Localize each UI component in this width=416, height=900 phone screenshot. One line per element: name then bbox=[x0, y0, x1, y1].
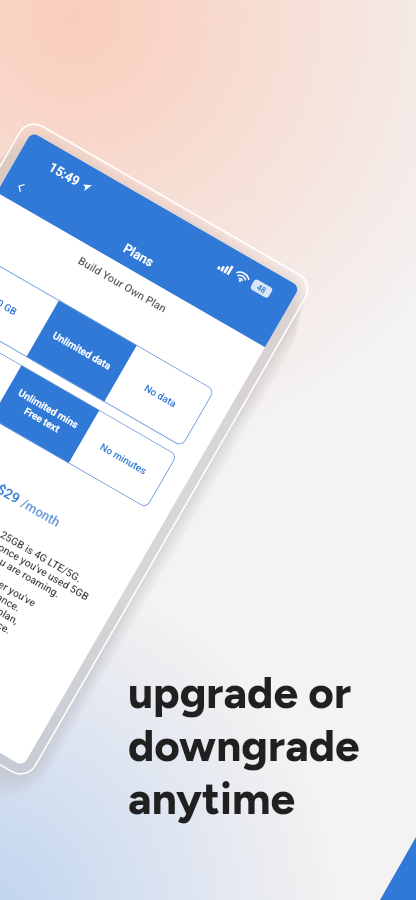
button[interactable]: Unlimited mins Free text bbox=[0, 365, 100, 464]
staticText: of your monthly allowance whilst you are… bbox=[0, 472, 63, 600]
staticText: upgrade or bbox=[128, 666, 352, 719]
staticText: No data bbox=[142, 382, 178, 410]
staticText: downgrade bbox=[128, 719, 360, 772]
staticText: 50 GB bbox=[0, 294, 19, 318]
button[interactable]: 50 GB bbox=[0, 255, 59, 357]
staticText: No minutes bbox=[98, 441, 149, 477]
staticText: Your data speeds may slow down once you'… bbox=[0, 461, 91, 603]
staticText: Unlimited data, of which the first 25GB … bbox=[0, 451, 84, 585]
staticText: /month bbox=[18, 496, 63, 530]
staticText: Plans bbox=[121, 240, 157, 270]
staticText: You will still receive unlimited data af… bbox=[0, 489, 38, 609]
staticText: 48 bbox=[255, 283, 268, 296]
staticText: Unlimited mins Free text bbox=[10, 387, 81, 442]
staticText: used up your full high speed data allowa… bbox=[0, 499, 23, 614]
button[interactable]: Back bbox=[0, 163, 45, 210]
button[interactable]: No data bbox=[104, 345, 215, 447]
button[interactable]: No calls bbox=[0, 320, 22, 419]
staticText: $29 bbox=[0, 481, 23, 507]
button[interactable]: Unlimited data bbox=[26, 300, 137, 402]
staticText: anytime bbox=[128, 772, 296, 825]
staticText: 15:49 bbox=[46, 159, 82, 189]
button[interactable]: No minutes bbox=[69, 410, 177, 509]
staticText: Unlimited data bbox=[50, 329, 113, 373]
staticText: all subject to our fair usage policy all… bbox=[0, 520, 13, 636]
staticText: Build Your Own Plan bbox=[0, 202, 260, 368]
staticText: Unlimited minutes and texts on a calling… bbox=[0, 510, 21, 627]
